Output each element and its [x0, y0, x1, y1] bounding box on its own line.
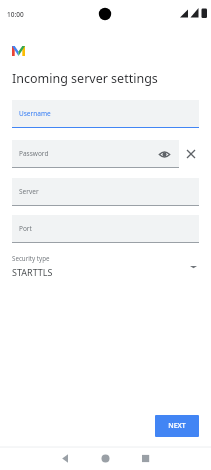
staticText: Username [19, 109, 51, 118]
staticText: Security type [12, 254, 50, 262]
staticText: NEXT [168, 421, 186, 431]
button[interactable]: Clear password [182, 145, 199, 162]
staticText: Password [19, 149, 49, 158]
button[interactable]: Server [12, 178, 199, 205]
staticText: Port [19, 224, 32, 233]
staticText: Incoming server settings [12, 70, 158, 87]
staticText: Server [19, 187, 39, 196]
button[interactable]: Username [12, 100, 199, 127]
staticText: 10:00 [7, 10, 24, 19]
button[interactable]: Security type [12, 254, 199, 278]
staticText: STARTTLS [12, 266, 53, 278]
button[interactable]: Password [12, 140, 179, 167]
button[interactable]: NEXT [155, 415, 199, 437]
button[interactable]: Show password [156, 146, 172, 162]
button[interactable]: Port [12, 215, 199, 242]
